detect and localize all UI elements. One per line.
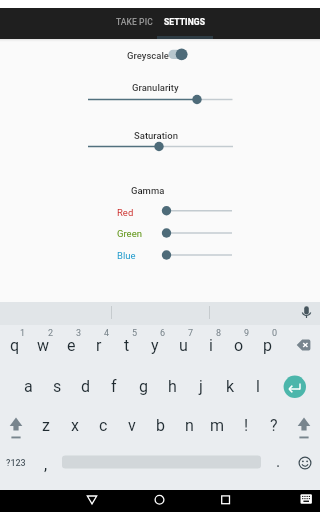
button[interactable]: x: [61, 408, 89, 442]
button[interactable]: .: [266, 444, 290, 478]
staticText: l: [256, 377, 260, 396]
button[interactable]: [283, 370, 317, 404]
staticText: t: [124, 336, 130, 355]
button[interactable]: n: [175, 408, 203, 442]
staticText: d: [81, 377, 91, 396]
button[interactable]: [288, 490, 320, 512]
staticText: i: [209, 336, 213, 355]
staticText: .: [276, 452, 281, 471]
button[interactable]: [292, 448, 318, 478]
staticText: f: [111, 377, 117, 396]
staticText: 7: [188, 328, 194, 339]
staticText: x: [71, 416, 79, 435]
staticText: Green: [117, 228, 142, 239]
button[interactable]: [296, 302, 320, 325]
staticText: 0: [272, 328, 278, 339]
staticText: Greyscale: [127, 50, 169, 61]
button[interactable]: ?123: [0, 446, 31, 480]
button[interactable]: [2, 408, 30, 441]
staticText: q: [10, 336, 20, 355]
staticText: o: [234, 336, 244, 355]
staticText: TAKE PIC: [116, 17, 153, 27]
staticText: p: [263, 336, 272, 355]
staticText: 6: [160, 328, 166, 339]
button[interactable]: q: [1, 328, 29, 362]
button[interactable]: c: [89, 408, 117, 442]
staticText: 5: [132, 328, 138, 339]
button[interactable]: w: [29, 328, 57, 362]
button[interactable]: a: [14, 369, 42, 403]
button[interactable]: [140, 490, 180, 512]
button[interactable]: s: [43, 369, 71, 403]
button[interactable]: ?: [260, 408, 288, 442]
staticText: s: [53, 377, 62, 396]
button[interactable]: [84, 89, 237, 110]
staticText: z: [42, 416, 50, 435]
button[interactable]: [60, 448, 263, 478]
button[interactable]: u: [169, 328, 197, 362]
staticText: 1: [20, 328, 26, 339]
staticText: b: [156, 416, 165, 435]
staticText: e: [67, 336, 76, 355]
button[interactable]: f: [100, 369, 128, 403]
staticText: ?123: [6, 458, 26, 469]
button[interactable]: i: [197, 328, 225, 362]
staticText: n: [185, 416, 194, 435]
staticText: Granularity: [132, 82, 179, 93]
staticText: ?: [270, 416, 278, 435]
staticText: 4: [104, 328, 110, 339]
staticText: 9: [244, 328, 250, 339]
staticText: v: [128, 416, 136, 435]
button[interactable]: y: [141, 328, 169, 362]
staticText: 3: [76, 328, 82, 339]
staticText: SETTINGS: [164, 17, 205, 27]
staticText: w: [37, 336, 50, 355]
button[interactable]: k: [216, 369, 244, 403]
button[interactable]: [101, 8, 157, 39]
button[interactable]: g: [129, 369, 157, 403]
staticText: Blue: [117, 250, 136, 261]
button[interactable]: l: [244, 369, 272, 403]
button[interactable]: d: [72, 369, 100, 403]
button[interactable]: [206, 490, 246, 512]
button[interactable]: p: [253, 328, 281, 362]
button[interactable]: t: [113, 328, 141, 362]
button[interactable]: [157, 8, 213, 39]
button[interactable]: !: [232, 408, 260, 442]
button[interactable]: z: [32, 408, 60, 442]
button[interactable]: m: [203, 408, 231, 442]
staticText: u: [179, 336, 188, 355]
button[interactable]: [159, 245, 237, 266]
staticText: a: [24, 377, 33, 396]
button[interactable]: b: [146, 408, 174, 442]
button[interactable]: [84, 136, 237, 157]
button[interactable]: r: [85, 328, 113, 362]
button[interactable]: [159, 200, 237, 221]
staticText: Gamma: [131, 185, 165, 196]
button[interactable]: j: [187, 369, 215, 403]
staticText: !: [244, 416, 249, 435]
button[interactable]: [159, 223, 237, 244]
staticText: Red: [117, 207, 134, 218]
staticText: Saturation: [134, 130, 178, 141]
button[interactable]: e: [57, 328, 85, 362]
staticText: c: [99, 416, 108, 435]
staticText: y: [151, 336, 159, 355]
staticText: h: [168, 377, 177, 396]
staticText: m: [210, 416, 225, 435]
button[interactable]: v: [118, 408, 146, 442]
button[interactable]: [165, 44, 195, 65]
staticText: 8: [216, 328, 222, 339]
staticText: g: [139, 377, 148, 396]
button[interactable]: ,: [34, 447, 58, 481]
staticText: 2: [48, 328, 54, 339]
button[interactable]: h: [158, 369, 186, 403]
button[interactable]: o: [225, 328, 253, 362]
button[interactable]: [290, 408, 318, 441]
staticText: ,: [44, 455, 48, 474]
staticText: j: [199, 377, 203, 396]
staticText: r: [96, 336, 102, 355]
button[interactable]: [72, 490, 112, 512]
staticText: k: [226, 377, 235, 396]
button[interactable]: [290, 328, 320, 361]
